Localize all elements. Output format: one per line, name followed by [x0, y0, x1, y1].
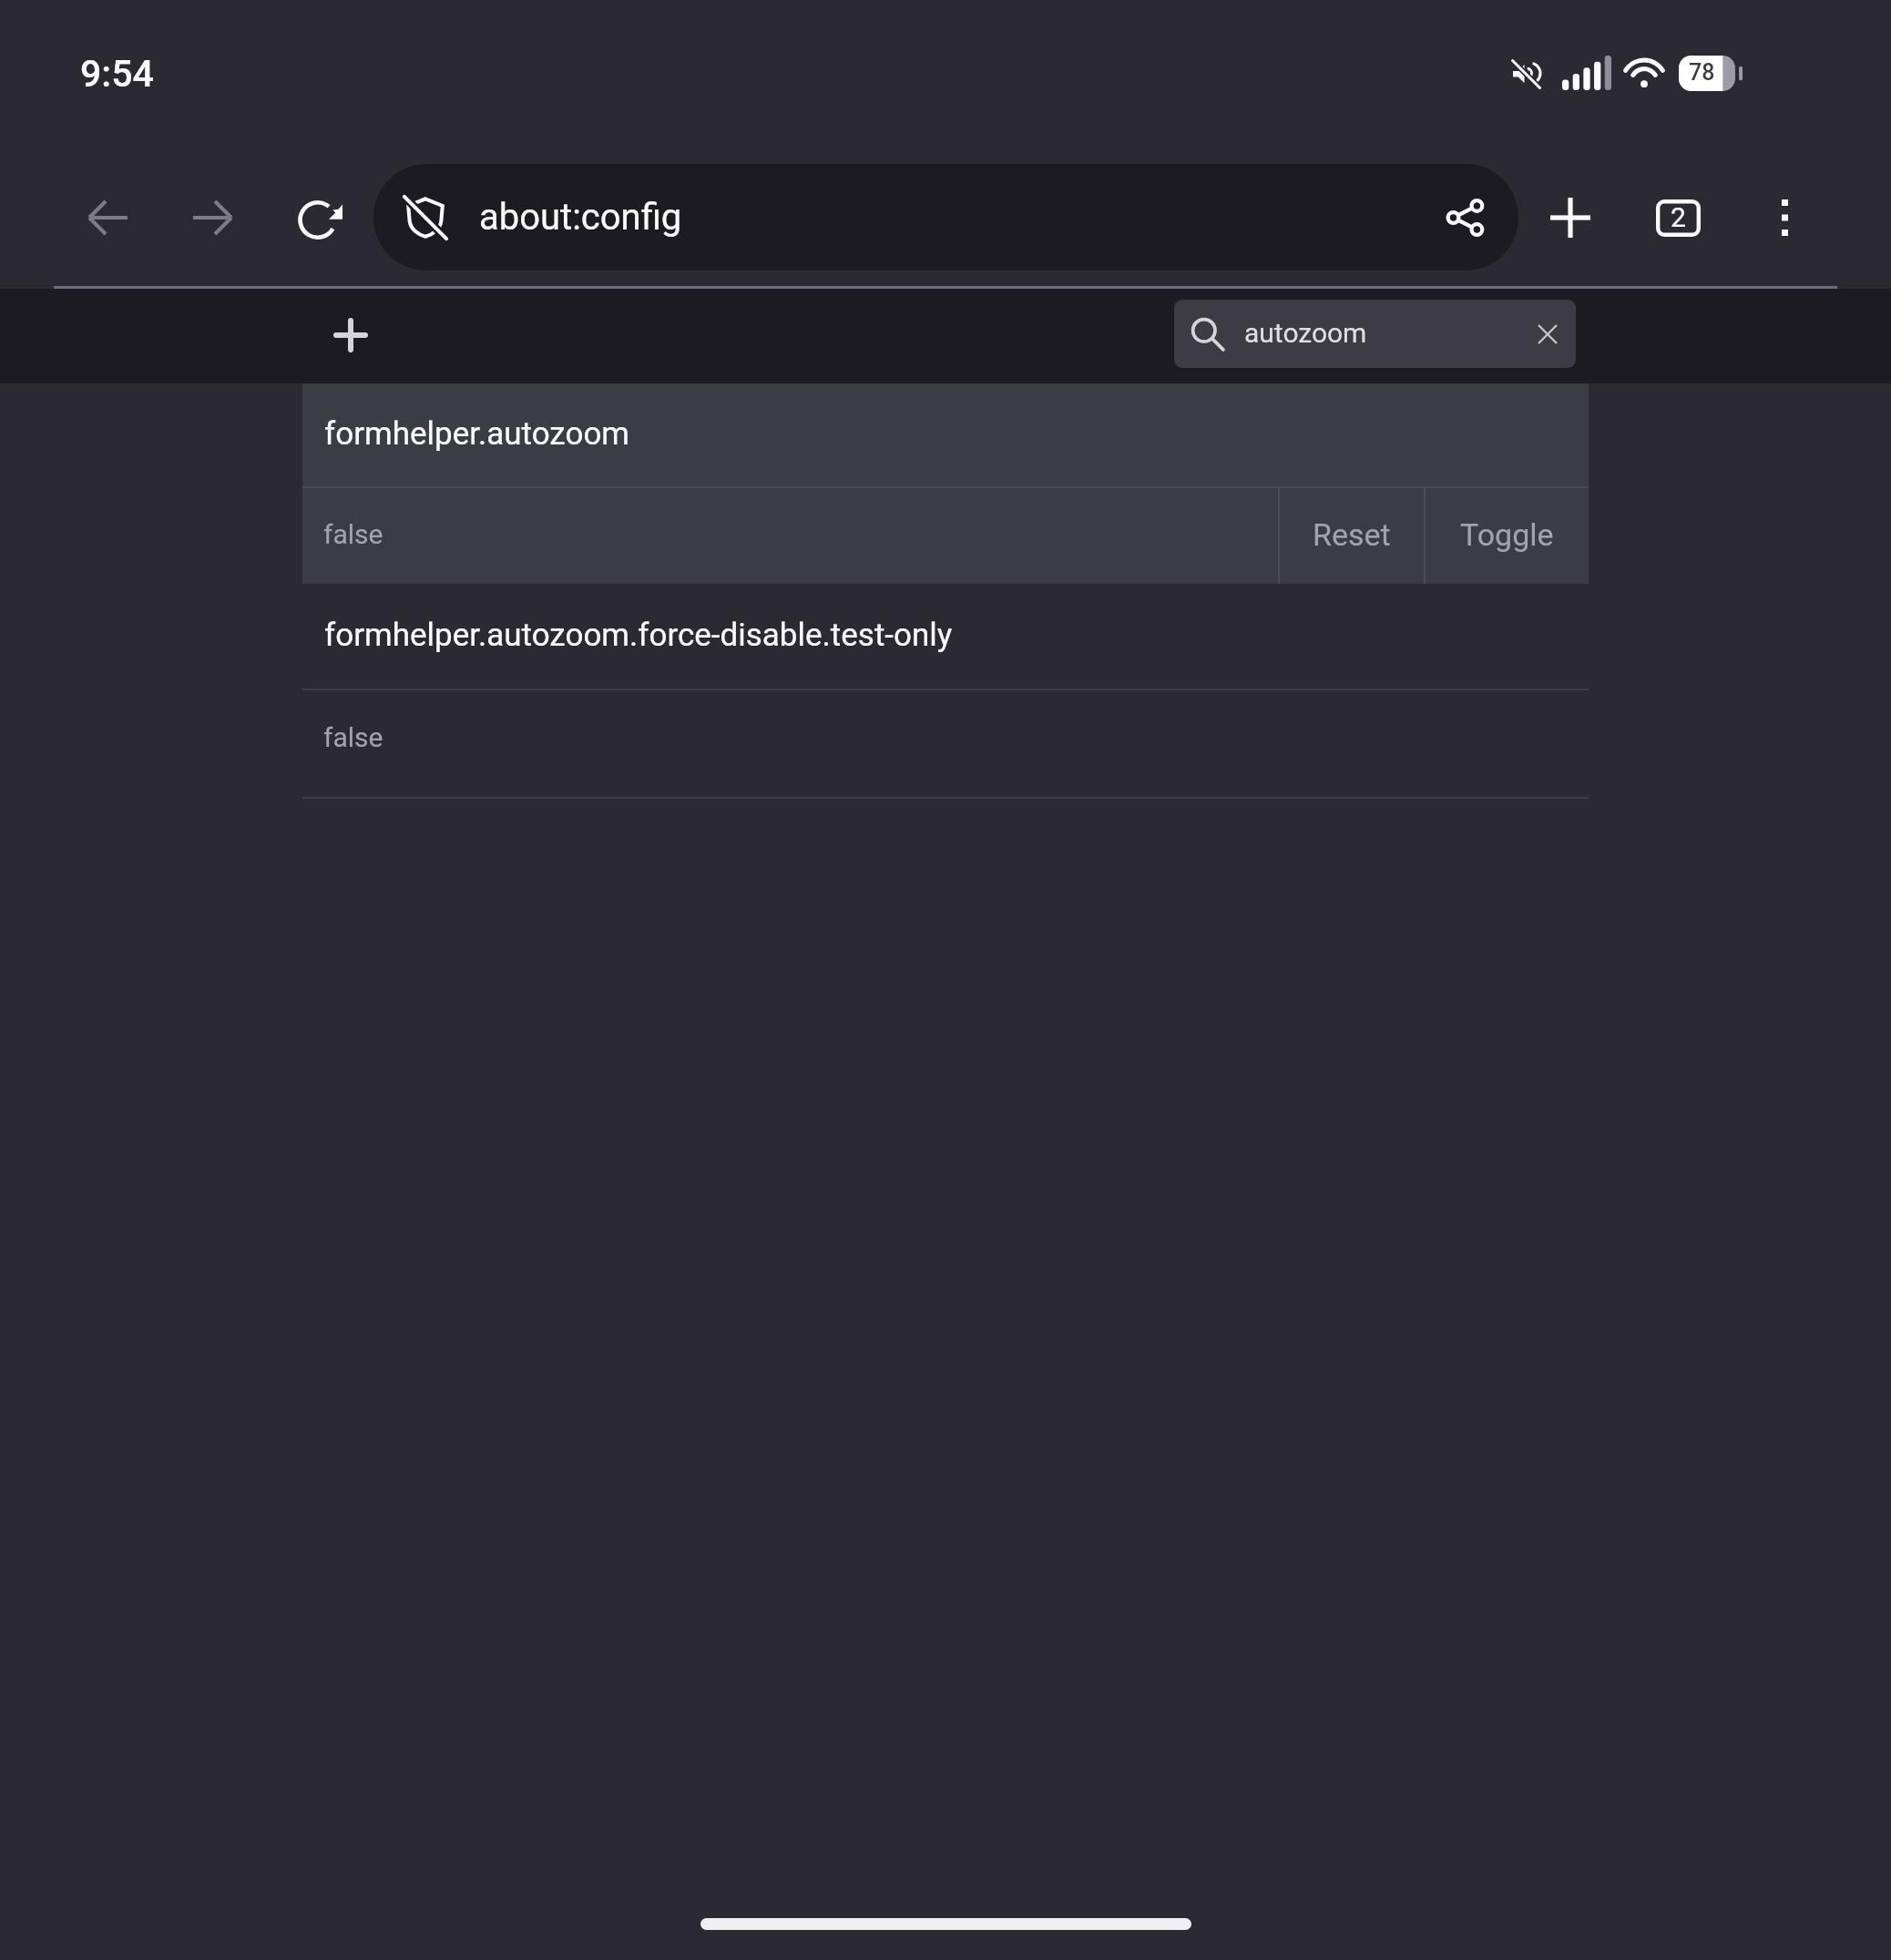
button[interactable]: formhelper.autozoom.force-disable.test-o…	[302, 584, 1589, 689]
staticText: false	[323, 518, 383, 550]
button[interactable]: Reload	[271, 166, 375, 270]
staticText: 78	[1689, 59, 1715, 86]
button[interactable]: Add preference	[301, 288, 401, 383]
button[interactable]: false	[302, 488, 1278, 584]
staticText: Toggle	[1460, 516, 1554, 553]
staticText: 9:54	[80, 52, 154, 96]
staticText: false	[323, 721, 383, 753]
button[interactable]: about:config	[373, 164, 1518, 271]
button[interactable]: Back	[56, 166, 159, 270]
button[interactable]: New tab	[1519, 167, 1621, 269]
staticText: formhelper.autozoom	[324, 415, 630, 453]
button[interactable]: false	[302, 690, 1589, 797]
button[interactable]: More options	[1733, 167, 1835, 269]
staticText: 2	[1671, 201, 1686, 233]
button[interactable]: formhelper.autozoom	[302, 383, 1589, 486]
button[interactable]: Share	[1416, 168, 1516, 268]
button[interactable]: Reset	[1280, 488, 1424, 584]
button[interactable]: Toggle	[1426, 488, 1589, 584]
button[interactable]: autozoom	[1174, 300, 1576, 368]
button[interactable]: Tabs	[1627, 167, 1729, 269]
staticText: about:config	[479, 196, 682, 239]
staticText: formhelper.autozoom.force-disable.test-o…	[324, 617, 953, 654]
button[interactable]: Clear search	[1519, 300, 1576, 368]
staticText: autozoom	[1244, 317, 1367, 349]
staticText: Reset	[1313, 516, 1391, 553]
button[interactable]: Forward	[161, 166, 265, 270]
